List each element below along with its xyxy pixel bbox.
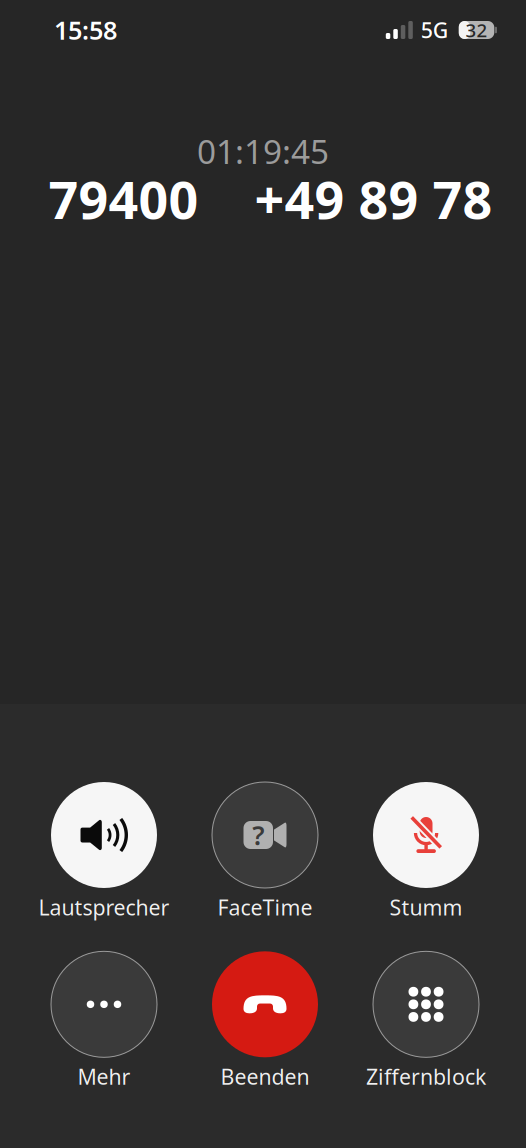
button[interactable]: Ziffernblock [345,951,506,1091]
staticText: +49 89 78 [254,164,492,233]
staticText: Stumm [389,893,462,921]
staticText: 15:58 [54,13,117,47]
button[interactable]: Beenden [184,951,345,1091]
staticText: 01:19:45 [197,129,329,173]
staticText: Ziffernblock [366,1062,486,1091]
button[interactable]: Lautsprecher [23,782,184,921]
staticText: FaceTime [217,893,312,921]
staticText: ? [252,817,264,853]
button[interactable]: ? [184,782,345,921]
staticText: Mehr [77,1062,130,1091]
staticText: Beenden [220,1062,309,1091]
staticText: 79400 [48,164,198,233]
staticText: 5G [421,16,449,44]
staticText: 32 [466,18,488,42]
staticText: Lautsprecher [38,893,169,921]
button[interactable]: Stumm [345,782,506,921]
button[interactable]: Mehr [23,951,184,1091]
